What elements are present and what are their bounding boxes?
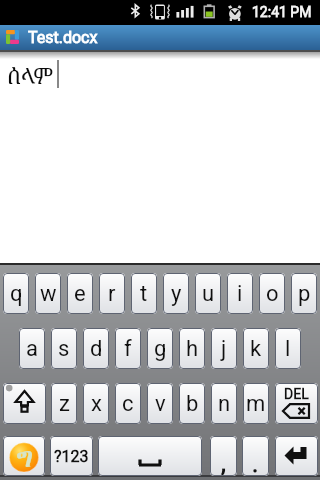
- button[interactable]: o: [259, 273, 285, 314]
- staticText: ሰላም: [7, 60, 54, 90]
- staticText: 12:41 PM: [252, 4, 312, 20]
- staticText: DEL: [284, 386, 309, 402]
- staticText: t: [140, 281, 148, 307]
- staticText: w: [40, 281, 57, 307]
- staticText: j: [221, 336, 227, 362]
- staticText: m: [246, 391, 266, 417]
- button[interactable]: c: [115, 383, 141, 424]
- button[interactable]: h: [179, 328, 205, 369]
- button[interactable]: k: [243, 328, 269, 369]
- staticText: d: [90, 336, 103, 362]
- staticText: l: [285, 336, 291, 362]
- staticText: g: [154, 336, 167, 362]
- button[interactable]: Space: [98, 436, 202, 476]
- staticText: p: [298, 281, 311, 307]
- staticText: n: [218, 391, 231, 417]
- staticText: y: [171, 281, 182, 307]
- button[interactable]: m: [243, 383, 269, 424]
- button[interactable]: p: [291, 273, 317, 314]
- button[interactable]: i: [227, 273, 253, 314]
- staticText: k: [250, 336, 262, 362]
- staticText: x: [91, 391, 102, 417]
- staticText: s: [58, 336, 70, 362]
- button[interactable]: u: [195, 273, 221, 314]
- staticText: a: [26, 336, 38, 362]
- button[interactable]: Enter: [275, 436, 318, 476]
- button[interactable]: Shift: [3, 383, 46, 424]
- button[interactable]: q: [3, 273, 29, 314]
- button[interactable]: Delete: [275, 383, 318, 424]
- staticText: ?123: [54, 447, 89, 466]
- staticText: c: [122, 391, 134, 417]
- button[interactable]: y: [163, 273, 189, 314]
- staticText: f: [124, 336, 132, 362]
- staticText: e: [74, 281, 86, 307]
- button[interactable]: a: [19, 328, 45, 369]
- staticText: b: [186, 391, 199, 417]
- staticText: r: [108, 281, 116, 307]
- button[interactable]: b: [179, 383, 205, 424]
- staticText: z: [59, 391, 70, 417]
- staticText: .: [252, 450, 259, 476]
- staticText: v: [155, 391, 166, 417]
- staticText: q: [10, 281, 23, 307]
- button[interactable]: l: [275, 328, 301, 369]
- button[interactable]: j: [211, 328, 237, 369]
- button[interactable]: ?123: [50, 436, 93, 476]
- button[interactable]: ,: [210, 436, 237, 476]
- button[interactable]: s: [51, 328, 77, 369]
- button[interactable]: t: [131, 273, 157, 314]
- button[interactable]: .: [242, 436, 269, 476]
- button[interactable]: v: [147, 383, 173, 424]
- button[interactable]: g: [147, 328, 173, 369]
- button[interactable]: Test.docx: [0, 25, 320, 50]
- staticText: i: [237, 281, 243, 307]
- button[interactable]: Change language: [3, 436, 45, 476]
- staticText: ግ: [16, 440, 33, 476]
- button[interactable]: w: [35, 273, 61, 314]
- button[interactable]: n: [211, 383, 237, 424]
- button[interactable]: z: [51, 383, 77, 424]
- staticText: ,: [221, 450, 226, 476]
- staticText: Test.docx: [28, 28, 98, 47]
- button[interactable]: f: [115, 328, 141, 369]
- staticText: h: [186, 336, 199, 362]
- button[interactable]: r: [99, 273, 125, 314]
- staticText: u: [202, 281, 215, 307]
- staticText: o: [266, 281, 279, 307]
- button[interactable]: d: [83, 328, 109, 369]
- button[interactable]: x: [83, 383, 109, 424]
- button[interactable]: e: [67, 273, 93, 314]
